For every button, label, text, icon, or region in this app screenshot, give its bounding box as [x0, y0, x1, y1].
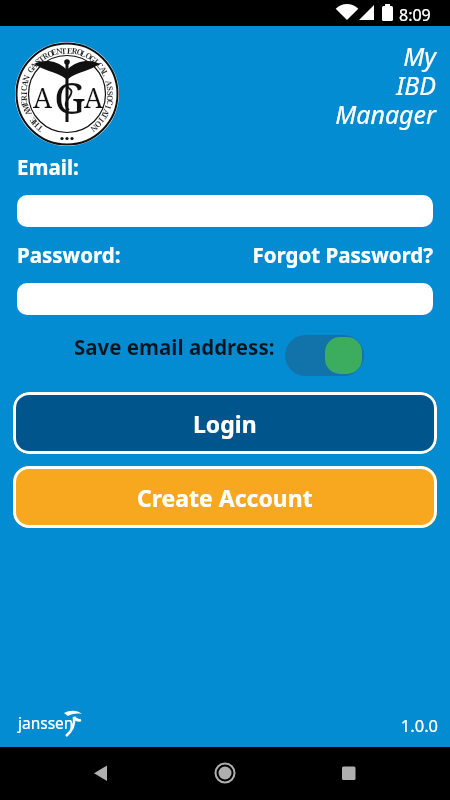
staticText: Password: — [17, 241, 121, 269]
staticText: I — [91, 56, 102, 67]
staticText: O — [75, 45, 85, 58]
staticText: My IBD Manager — [286, 39, 436, 131]
staticText: O — [45, 47, 56, 60]
staticText: G — [24, 63, 37, 75]
button[interactable]: Login — [13, 392, 437, 454]
staticText: Login — [193, 408, 257, 439]
staticText: 8:09 — [399, 4, 431, 26]
staticText: T — [61, 45, 67, 56]
button[interactable] — [15, 42, 119, 146]
staticText: T — [36, 52, 47, 65]
button[interactable]: Create Account — [13, 466, 437, 528]
staticText: E — [26, 115, 39, 126]
staticText: A — [97, 64, 110, 76]
button[interactable] — [17, 283, 433, 315]
staticText: G — [87, 52, 99, 65]
staticText: S — [105, 91, 116, 96]
staticText: C — [18, 84, 29, 92]
staticText: I — [103, 104, 114, 111]
staticText: A — [21, 107, 34, 118]
staticText: R — [18, 94, 29, 101]
staticText: E — [50, 45, 59, 58]
staticText: L — [99, 68, 112, 78]
staticText: janssen — [18, 712, 74, 733]
staticText: 1.0.0 — [388, 714, 438, 736]
staticText: A — [103, 79, 116, 88]
button[interactable] — [17, 195, 433, 227]
staticText: A — [100, 108, 113, 119]
staticText: C — [94, 59, 107, 71]
button[interactable] — [300, 747, 450, 800]
staticText: Email: — [17, 153, 79, 181]
staticText: C — [104, 99, 116, 107]
staticText: S — [32, 55, 43, 67]
staticText: A — [84, 79, 104, 116]
staticText: Save email address: — [74, 333, 275, 361]
staticText: R — [71, 45, 79, 56]
staticText: A — [18, 78, 31, 87]
staticText: O — [83, 49, 95, 62]
staticText: I — [96, 116, 107, 126]
staticText: E — [67, 45, 73, 56]
staticText: A — [27, 59, 40, 71]
staticText: O — [105, 94, 116, 102]
staticText: H — [29, 118, 41, 131]
staticText: N — [19, 72, 32, 83]
staticText: E — [17, 99, 29, 107]
staticText: I — [18, 91, 29, 95]
staticText: T — [33, 122, 45, 135]
button[interactable] — [0, 747, 150, 800]
staticText: G — [54, 67, 86, 127]
staticText: Create Account — [137, 482, 313, 513]
staticText: R — [40, 49, 50, 62]
button[interactable]: Forgot Password? — [233, 241, 433, 269]
staticText: M — [19, 102, 32, 113]
staticText: S — [105, 85, 116, 92]
staticText: T — [98, 111, 111, 122]
staticText: L — [79, 47, 89, 60]
button[interactable] — [285, 335, 364, 376]
staticText: A — [33, 79, 53, 116]
staticText: N — [55, 44, 64, 56]
button[interactable] — [150, 747, 300, 800]
staticText: N — [88, 122, 100, 135]
staticText: O — [92, 119, 105, 131]
